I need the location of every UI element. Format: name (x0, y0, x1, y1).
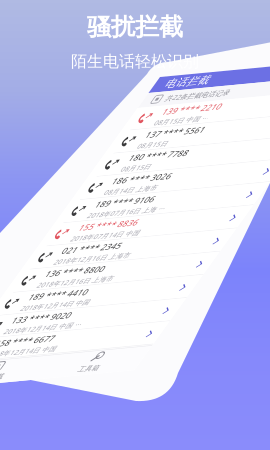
staticText: 陌生电话轻松识别 (71, 51, 199, 71)
staticText: 189 **** 4410 (190, 294, 249, 306)
button[interactable]: 180 **** 7788 (160, 154, 270, 178)
staticText: 2018年12月16日 上海市 (190, 260, 266, 269)
button[interactable]: 133 **** 9020 (160, 317, 270, 340)
button[interactable]: 155 **** 8836 (160, 224, 270, 247)
staticText: 骚扰拦截 (87, 12, 183, 42)
staticText: 155 **** 8836 (190, 225, 249, 236)
button[interactable]: 137 **** 5561 (160, 131, 270, 154)
button[interactable]: 158 **** 6677 (160, 340, 270, 363)
staticText: 139 **** 2210 (190, 109, 249, 120)
staticText: 2018年12月14日 中国 ··· (190, 330, 267, 339)
staticText: 158 **** 6677 (190, 341, 249, 352)
staticText: 2018年07月14日 中国 (190, 237, 259, 246)
staticText: 021 **** 2345 (190, 248, 249, 259)
staticText: 2018年12月16日 上海市 (190, 284, 266, 293)
button[interactable]: 186 **** 3026 (160, 178, 270, 201)
button[interactable]: 021 **** 2345 (160, 247, 270, 270)
button[interactable]: 136 **** 8800 (160, 270, 270, 294)
staticText: 08月15日 中国 ··· (190, 121, 244, 130)
staticText: 137 **** 5561 (190, 132, 249, 143)
staticText: 2018年07月16日 上海 ··· (190, 214, 267, 223)
staticText: 136 **** 8800 (190, 271, 249, 283)
button[interactable]: 短信拦截 (160, 364, 259, 389)
staticText: 2018年12月14日 中国 (190, 307, 259, 316)
staticText: 电话拦截 (172, 78, 216, 92)
staticText: 共22条拦截电话记录 (183, 96, 247, 105)
button[interactable]: 139 **** 2210 (160, 108, 270, 131)
button[interactable]: 189 **** 9106 (160, 201, 270, 224)
staticText: 133 **** 9020 (190, 318, 249, 329)
button[interactable]: 189 **** 4410 (160, 294, 270, 317)
